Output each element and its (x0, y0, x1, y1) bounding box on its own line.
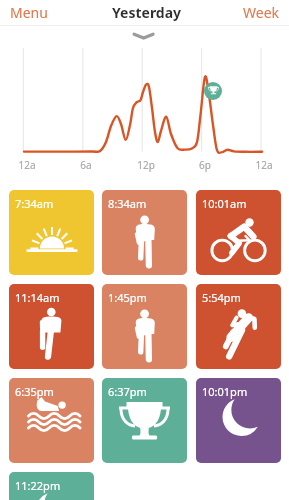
staticText: 6:37pm (108, 384, 147, 399)
button[interactable]: Menu (0, 0, 58, 25)
button[interactable]: Achievement (204, 82, 222, 100)
staticText: 6p (185, 158, 225, 172)
button[interactable]: 10:01am (196, 190, 281, 275)
staticText: 10:01am (202, 196, 247, 211)
staticText: 5:54pm (202, 290, 241, 305)
button[interactable]: 1:45pm (102, 284, 187, 369)
staticText: Yesterday (112, 3, 182, 22)
button[interactable]: 11:22pm (9, 472, 94, 500)
button[interactable]: 7:34am (9, 190, 94, 275)
staticText: 11:22pm (15, 478, 61, 493)
staticText: 6:35pm (15, 384, 54, 399)
staticText: 6a (66, 158, 106, 172)
staticText: Week (243, 3, 280, 22)
staticText: 1:45pm (108, 290, 147, 305)
staticText: Menu (10, 3, 48, 22)
button[interactable]: 5:54pm (196, 284, 281, 369)
button[interactable]: 11:14am (9, 284, 94, 369)
staticText: 8:34am (108, 196, 147, 211)
staticText: 12a (7, 158, 47, 172)
button[interactable]: 10:01pm (196, 378, 281, 463)
staticText: 11:14am (15, 290, 60, 305)
button[interactable]: 8:34am (102, 190, 187, 275)
button[interactable]: Week (233, 0, 289, 25)
button[interactable]: 6:37pm (102, 378, 187, 463)
staticText: 10:01pm (202, 384, 248, 399)
staticText: 12a (244, 158, 284, 172)
button[interactable]: 6:35pm (9, 378, 94, 463)
staticText: 7:34am (15, 196, 54, 211)
staticText: 12p (126, 158, 166, 172)
